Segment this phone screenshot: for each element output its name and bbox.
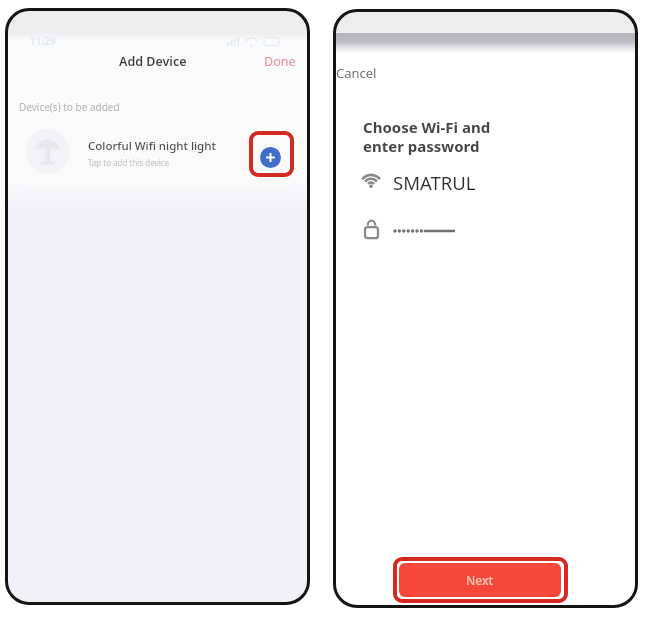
staticText: SMATRUL <box>393 170 476 195</box>
staticText: Next <box>466 572 494 588</box>
button[interactable]: Next <box>399 563 561 597</box>
staticText: Choose Wi-Fi and enter password <box>363 117 491 156</box>
staticText: Done <box>264 53 296 70</box>
staticText: Device(s) to be added <box>19 100 120 114</box>
staticText: Add Device <box>119 53 187 70</box>
button[interactable]: Done <box>264 53 296 70</box>
staticText: Colorful Wifi night light <box>88 138 216 154</box>
staticText: Cancel <box>336 64 377 82</box>
staticText: Tap to add this device <box>88 157 170 168</box>
button[interactable]: Add device <box>260 147 281 168</box>
staticText: 11:29 <box>30 34 56 48</box>
button[interactable]: Cancel <box>336 64 377 82</box>
button[interactable]: Colorful Wifi night light <box>21 114 294 186</box>
